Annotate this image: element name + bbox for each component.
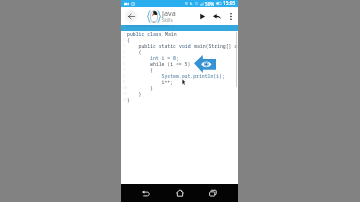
staticText: 11: [123, 91, 128, 96]
staticText: while (i <= 5): [127, 61, 191, 67]
staticText: 12: [123, 97, 128, 102]
staticText: int i = 0;: [127, 55, 179, 61]
staticText: 6: [123, 61, 126, 66]
button[interactable]: Recent apps: [205, 185, 221, 201]
staticText: }: [127, 97, 130, 103]
staticText: }: [127, 91, 142, 97]
staticText: i++;: [127, 79, 174, 85]
button[interactable]: Home: [172, 185, 188, 201]
staticText: 15:05: [223, 0, 236, 7]
staticText: 2: [123, 37, 126, 42]
staticText: public static: [127, 43, 179, 49]
staticText: {: [127, 37, 130, 43]
button[interactable]: Back: [138, 185, 154, 201]
staticText: 10: [123, 85, 128, 90]
staticText: System.out.println(i);: [127, 73, 225, 79]
button[interactable]: Run: [195, 9, 209, 23]
staticText: UntitledDocument 1: [126, 25, 175, 28]
staticText: 8: [123, 73, 126, 78]
button[interactable]: More options: [225, 10, 237, 22]
staticText: 3: [123, 43, 126, 48]
button[interactable]: Back: [125, 10, 137, 22]
staticText: void: [179, 43, 194, 49]
staticText: 9: [123, 79, 126, 84]
staticText: main(String[] ar: [194, 43, 238, 49]
staticText: Main: [165, 31, 177, 37]
staticText: {: [127, 49, 142, 55]
staticText: 50%: [205, 1, 215, 7]
staticText: 7: [123, 67, 126, 72]
button[interactable]: Undo: [210, 9, 224, 23]
staticText: {: [127, 67, 153, 73]
staticText: 1: [123, 31, 126, 36]
staticText: }: [127, 85, 153, 91]
staticText: Java: [162, 8, 176, 18]
staticText: public class: [127, 31, 165, 37]
staticText: 4: [123, 49, 126, 54]
staticText: 5: [123, 55, 126, 60]
staticText: Skills: [162, 17, 173, 23]
